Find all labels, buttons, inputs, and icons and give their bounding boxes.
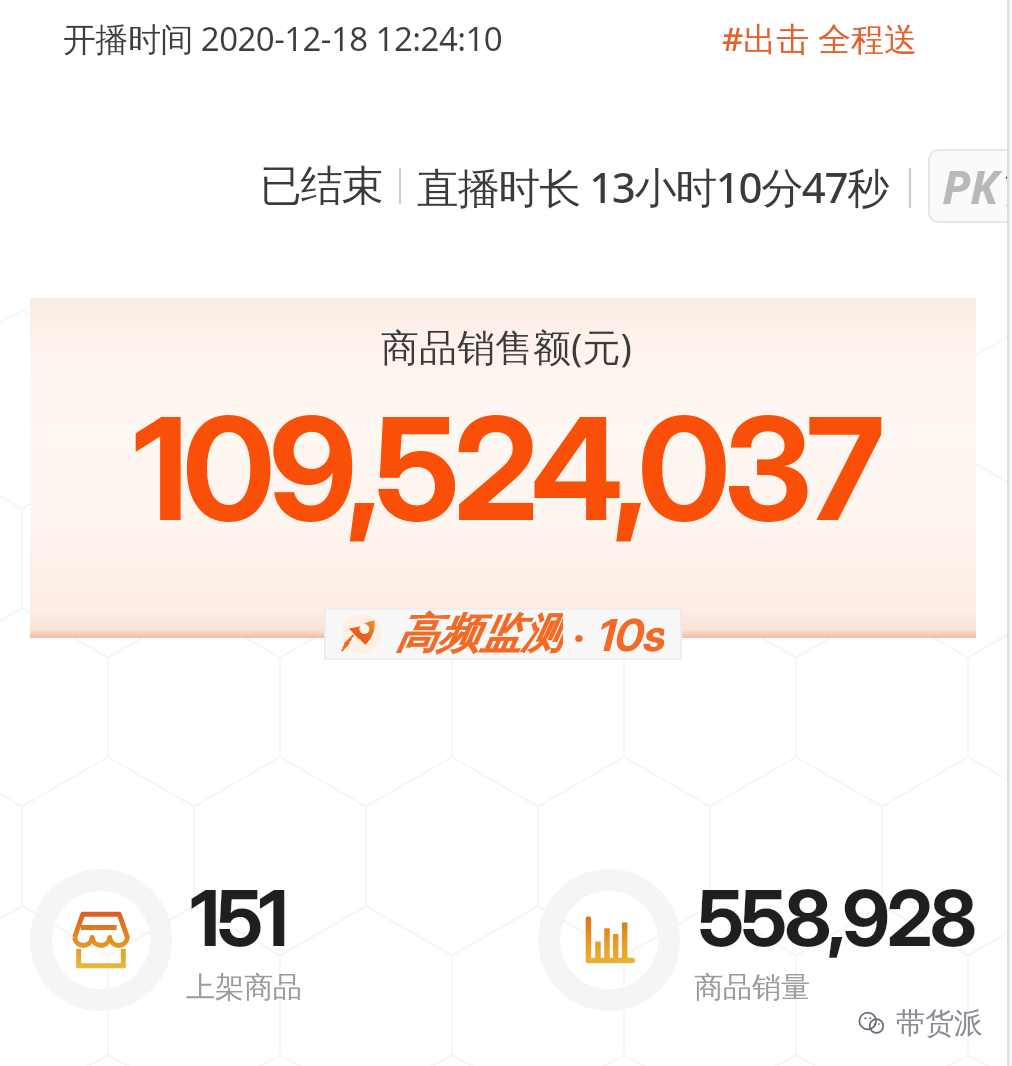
staticText: #出击 全程送 — [722, 16, 917, 61]
staticText: PK — [942, 155, 999, 218]
button[interactable]: 高频监测 — [324, 608, 682, 660]
staticText: 浏 — [1005, 158, 1012, 216]
button[interactable]: PK — [928, 149, 1012, 223]
staticText: 商品销量 — [694, 969, 810, 1006]
staticText: 带货派 — [896, 1005, 983, 1042]
staticText: 高频监测 — [395, 608, 563, 660]
staticText: 已结束 — [260, 160, 383, 213]
staticText: 上架商品 — [186, 969, 302, 1006]
button[interactable]: Sales volume — [538, 869, 680, 1011]
staticText: 10s — [595, 608, 664, 660]
staticText: 109,524,037 — [133, 382, 879, 554]
staticText: 开播时间 2020-12-18 12:24:10 — [63, 16, 503, 61]
staticText: · — [573, 608, 585, 660]
staticText: 151 — [190, 871, 286, 964]
button[interactable]: Listed products — [30, 869, 172, 1011]
staticText: 商品销售额(元) — [381, 320, 632, 372]
staticText: 558,928 — [698, 871, 975, 964]
staticText: 直播时长 13小时10分47秒 — [417, 158, 888, 215]
